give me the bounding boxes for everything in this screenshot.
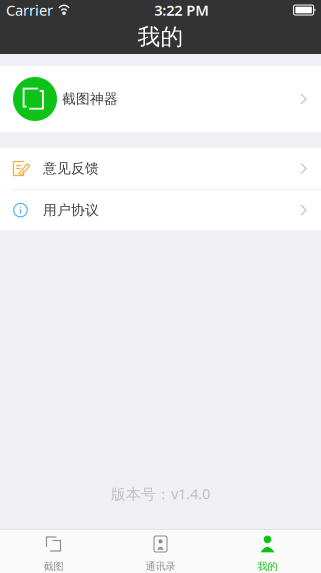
staticText: Carrier <box>6 0 53 20</box>
staticText: 我的 <box>257 560 277 573</box>
staticText: 我的 <box>137 23 183 51</box>
staticText: 意见反馈 <box>43 160 99 177</box>
staticText: 通讯录 <box>145 560 175 573</box>
staticText: 3:22 PM <box>154 0 209 20</box>
staticText: 用户协议 <box>43 201 99 219</box>
staticText: 版本号：v1.4.0 <box>111 484 210 503</box>
button[interactable]: 截图 <box>0 530 107 573</box>
button[interactable]: 用户协议 <box>0 190 321 231</box>
button[interactable]: 截图神器 <box>0 66 321 132</box>
button[interactable]: 通讯录 <box>107 530 214 573</box>
staticText: 截图 <box>43 560 63 573</box>
staticText: 截图神器 <box>62 90 118 108</box>
button[interactable]: 意见反馈 <box>0 148 321 189</box>
button[interactable]: 我的 <box>214 530 321 573</box>
